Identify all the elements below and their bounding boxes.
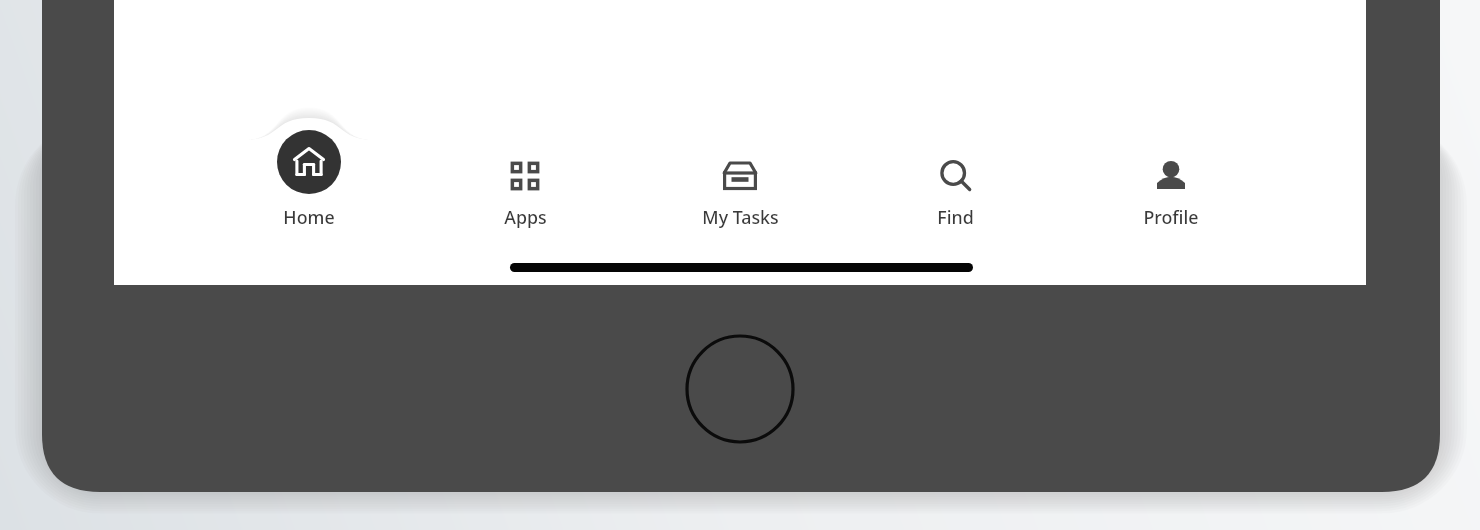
staticText: Profile xyxy=(1143,205,1199,229)
staticText: Home xyxy=(283,205,335,229)
button[interactable]: Find xyxy=(851,140,1059,285)
staticText: Apps xyxy=(504,205,547,229)
staticText: My Tasks xyxy=(702,205,779,229)
staticText: Find xyxy=(937,205,974,229)
button[interactable]: Home xyxy=(205,140,413,285)
button[interactable]: Profile xyxy=(1067,140,1275,285)
button[interactable]: Apps xyxy=(421,140,629,285)
button[interactable]: My Tasks xyxy=(636,140,844,285)
